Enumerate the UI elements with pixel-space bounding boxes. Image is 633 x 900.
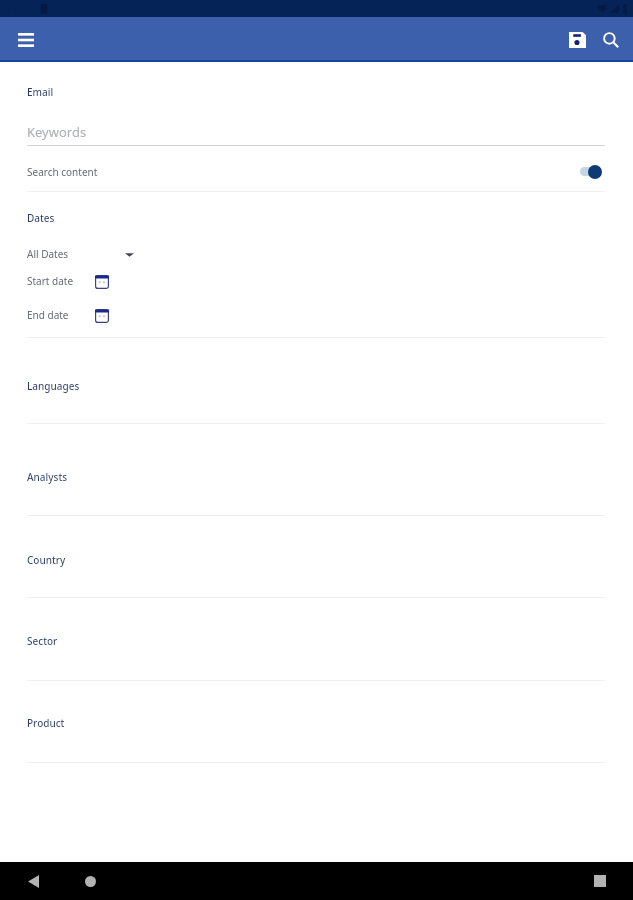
- button[interactable]: All Dates: [27, 243, 134, 265]
- button[interactable]: Home: [77, 868, 103, 894]
- button[interactable]: Search: [595, 24, 627, 56]
- button[interactable]: End date: [27, 303, 112, 327]
- button[interactable]: Back: [20, 868, 46, 894]
- button[interactable]: Save: [561, 24, 593, 56]
- button[interactable]: Recent apps: [587, 868, 613, 894]
- button[interactable]: Product: [0, 701, 633, 763]
- staticText: Product: [27, 716, 65, 730]
- staticText: Analysts: [27, 470, 68, 484]
- button[interactable]: Analysts: [0, 455, 633, 516]
- button[interactable]: Search content toggle: [574, 159, 608, 184]
- staticText: Keywords: [27, 123, 87, 141]
- button[interactable]: Start date: [27, 269, 112, 293]
- button[interactable]: Open navigation menu: [10, 24, 42, 56]
- staticText: Languages: [27, 379, 80, 393]
- staticText: End date: [27, 308, 69, 322]
- staticText: Country: [27, 553, 66, 567]
- button[interactable]: Languages: [0, 364, 633, 424]
- button[interactable]: Keywords: [27, 118, 605, 146]
- staticText: Start date: [27, 274, 74, 288]
- button[interactable]: Search content: [0, 159, 633, 184]
- staticText: Dates: [27, 211, 55, 225]
- staticText: Search content: [27, 165, 98, 179]
- staticText: Sector: [27, 634, 58, 648]
- staticText: Email: [27, 85, 54, 99]
- button[interactable]: Sector: [0, 619, 633, 681]
- button[interactable]: Country: [0, 538, 633, 598]
- staticText: All Dates: [27, 247, 69, 261]
